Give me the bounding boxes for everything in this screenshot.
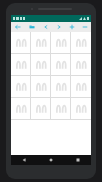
button[interactable]: Zoom out: [78, 22, 91, 32]
button[interactable]: Item: [71, 76, 91, 97]
button[interactable]: Back: [11, 22, 25, 32]
button[interactable]: Item: [71, 54, 91, 75]
button[interactable]: Folder: [25, 22, 39, 32]
button[interactable]: Item: [71, 32, 91, 53]
button[interactable]: Item: [71, 98, 91, 119]
button[interactable]: Zoom in: [65, 22, 78, 32]
button[interactable]: Recents: [64, 155, 91, 165]
button[interactable]: Item: [51, 54, 71, 75]
button[interactable]: Item: [31, 76, 51, 97]
button[interactable]: Item: [31, 98, 51, 119]
button[interactable]: Item: [51, 76, 71, 97]
button[interactable]: Item: [11, 98, 31, 119]
button[interactable]: Item: [51, 32, 71, 53]
button[interactable]: Item: [31, 54, 51, 75]
button[interactable]: Item: [11, 32, 31, 53]
button[interactable]: Back: [11, 155, 37, 165]
button[interactable]: Next: [52, 22, 65, 32]
button[interactable]: Previous: [39, 22, 52, 32]
button[interactable]: Item: [11, 54, 31, 75]
button[interactable]: Item: [31, 32, 51, 53]
button[interactable]: Home: [37, 155, 64, 165]
button[interactable]: Item: [51, 98, 71, 119]
button[interactable]: Item: [11, 76, 31, 97]
